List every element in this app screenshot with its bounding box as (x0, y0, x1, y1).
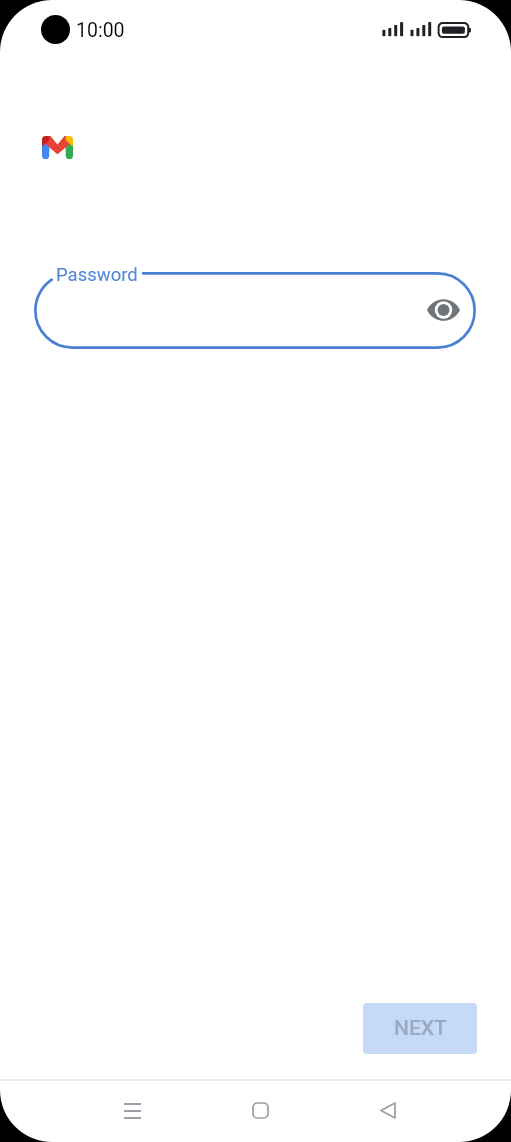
button[interactable]: Recent apps (87, 1081, 177, 1142)
staticText: NEXT (394, 1016, 447, 1041)
button[interactable]: Back (343, 1081, 433, 1142)
staticText: 10:00 (76, 19, 125, 42)
button[interactable]: NEXT (363, 1003, 477, 1054)
button[interactable]: Home (215, 1081, 305, 1142)
button[interactable]: Show password (419, 286, 467, 334)
staticText: Password (56, 264, 138, 286)
